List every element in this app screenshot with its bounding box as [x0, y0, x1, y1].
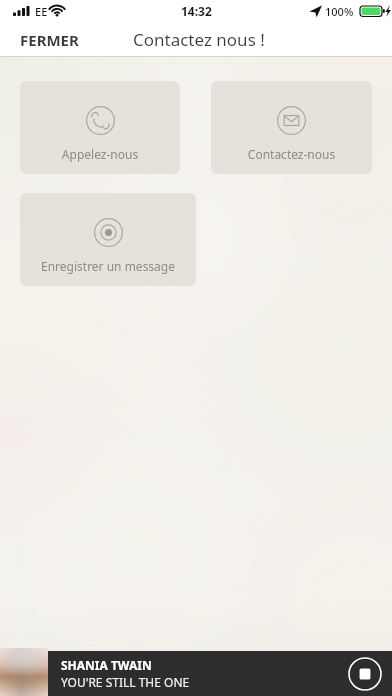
- staticText: FERMER: [20, 30, 79, 50]
- staticText: Enregistrer un message: [24, 258, 192, 274]
- staticText: SHANIA TWAIN: [61, 657, 152, 673]
- staticText: Contactez-nous: [215, 146, 368, 162]
- button[interactable]: Enregistrer un message: [20, 193, 196, 286]
- staticText: 100%: [325, 4, 354, 19]
- staticText: YOU'RE STILL THE ONE: [61, 674, 190, 690]
- button[interactable]: FERMER: [12, 26, 87, 54]
- staticText: EE: [35, 4, 48, 19]
- staticText: Contactez nous !: [133, 28, 265, 51]
- button[interactable]: Contactez-nous: [211, 81, 372, 174]
- staticText: 14:32: [181, 3, 212, 19]
- button[interactable]: Appelez-nous: [20, 81, 180, 174]
- button[interactable]: SHANIA TWAIN: [48, 651, 392, 696]
- button[interactable]: Stop: [348, 657, 382, 691]
- staticText: Appelez-nous: [24, 146, 176, 162]
